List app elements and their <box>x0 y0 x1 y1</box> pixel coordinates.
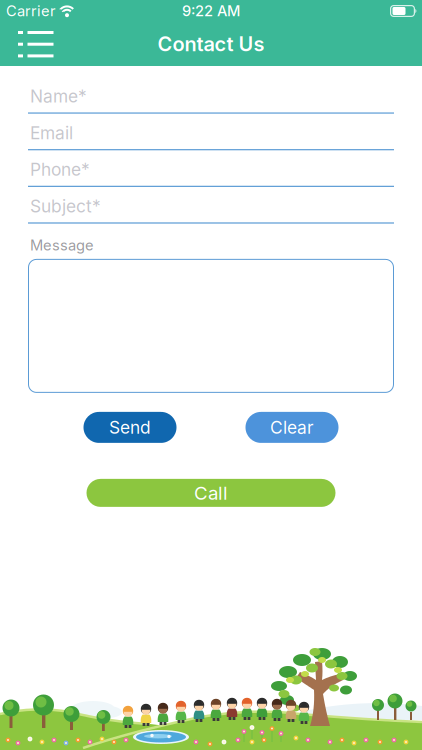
staticText: Phone* <box>30 159 90 180</box>
button[interactable]: Email <box>28 114 394 150</box>
staticText: Subject* <box>30 196 101 216</box>
button[interactable]: Call <box>86 479 335 507</box>
button[interactable]: Subject* <box>28 187 394 223</box>
staticText: Call <box>194 482 228 504</box>
button[interactable]: Name* <box>28 77 394 114</box>
staticText: Clear <box>270 417 314 438</box>
staticText: Name* <box>30 86 87 106</box>
staticText: Contact Us <box>157 32 264 56</box>
button[interactable]: Message <box>28 254 394 393</box>
staticText: 9:22 AM <box>182 2 240 20</box>
button[interactable]: Clear <box>245 412 338 443</box>
staticText: Send <box>109 417 151 438</box>
button[interactable]: Menu <box>0 27 54 61</box>
staticText: Email <box>30 123 73 143</box>
button[interactable]: Phone* <box>28 150 394 187</box>
staticText: Carrier <box>6 2 56 20</box>
staticText: Message <box>30 237 94 254</box>
button[interactable]: Send <box>83 412 176 443</box>
